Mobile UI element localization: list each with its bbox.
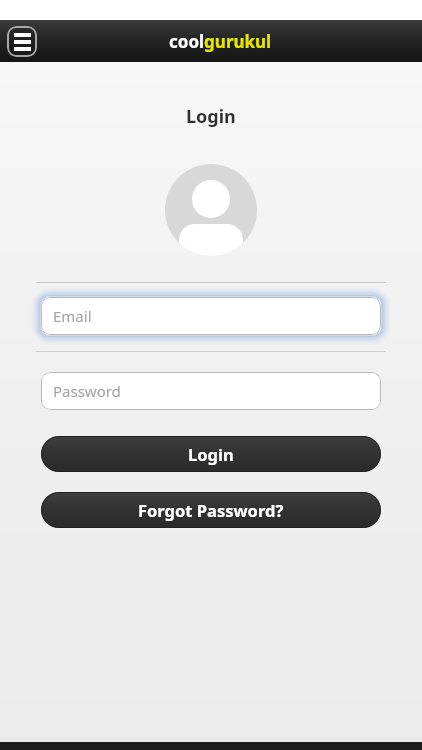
- staticText: Password: [53, 381, 121, 401]
- staticText: Login: [186, 104, 236, 129]
- staticText: coolgurukul: [169, 30, 272, 53]
- button[interactable]: Password: [41, 372, 381, 410]
- button[interactable]: Login: [41, 436, 381, 472]
- button[interactable]: [7, 26, 37, 57]
- button[interactable]: Forgot Password?: [41, 492, 381, 528]
- button[interactable]: Email: [41, 297, 381, 335]
- staticText: Email: [53, 306, 92, 326]
- staticText: Forgot Password?: [138, 499, 284, 521]
- staticText: Login: [188, 443, 234, 465]
